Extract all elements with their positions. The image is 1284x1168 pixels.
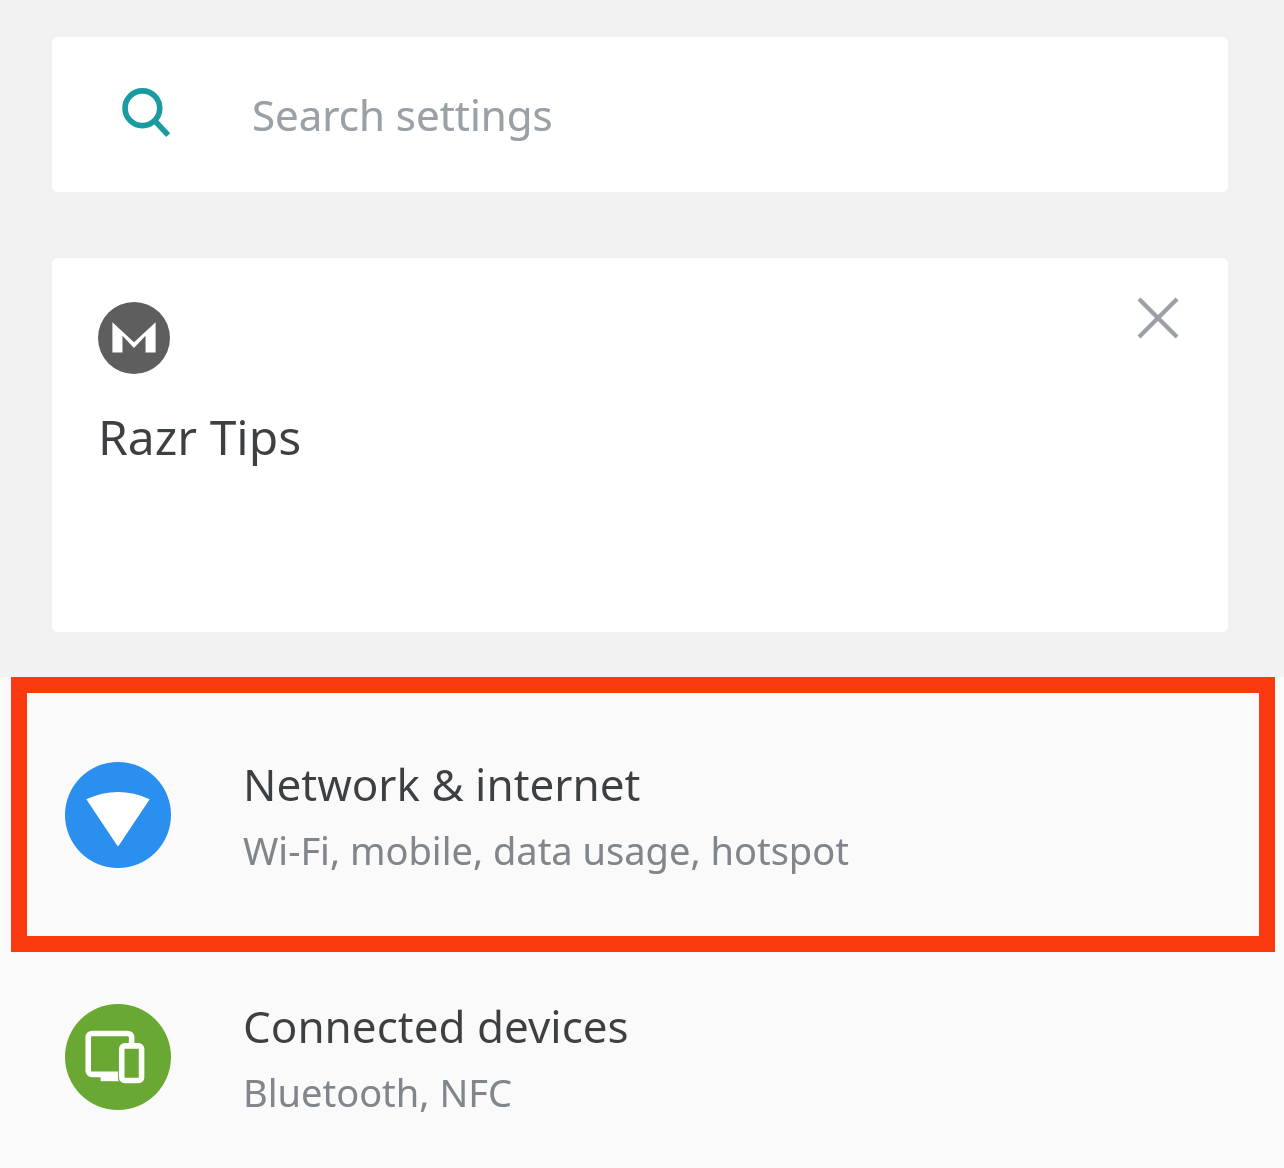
staticText: Connected devices: [243, 996, 629, 1056]
button[interactable]: Search settings: [52, 37, 1228, 192]
staticText: Razr Tips: [98, 404, 302, 469]
staticText: Bluetooth, NFC: [243, 1066, 513, 1118]
staticText: Network & internet: [243, 754, 641, 814]
staticText: Search settings: [252, 86, 553, 143]
button[interactable]: Close: [1122, 282, 1194, 354]
button[interactable]: Connected devices: [0, 952, 1284, 1162]
staticText: Wi-Fi, mobile, data usage, hotspot: [243, 824, 849, 876]
button[interactable]: Network & internet: [0, 677, 1284, 952]
button[interactable]: Razr Tips: [52, 258, 1228, 632]
